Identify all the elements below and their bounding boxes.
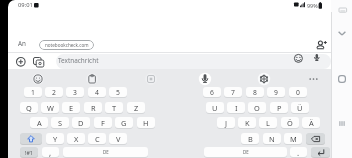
staticText: Z [134, 103, 139, 113]
button[interactable]: Q [20, 102, 38, 113]
staticText: 8 [253, 88, 257, 97]
button[interactable]: 3 [66, 87, 84, 97]
button[interactable]: 1 [24, 87, 42, 97]
button[interactable]: R [84, 102, 102, 113]
staticText: 9 [274, 88, 278, 97]
button[interactable]: D [72, 117, 90, 128]
button[interactable] [16, 57, 26, 67]
button[interactable] [339, 8, 347, 13]
button[interactable]: I [227, 102, 245, 113]
staticText: E [69, 103, 74, 113]
staticText: D [78, 118, 84, 128]
button[interactable]: 6 [203, 87, 221, 97]
staticText: F [101, 118, 105, 128]
staticText: An [18, 39, 26, 48]
button[interactable] [33, 57, 45, 68]
button[interactable]: S [51, 117, 69, 128]
button[interactable]: V [109, 133, 127, 144]
button[interactable] [257, 72, 271, 86]
button[interactable]: notebookcheck.com [39, 40, 94, 50]
staticText: I [235, 103, 238, 113]
staticText: Ü [297, 103, 303, 113]
button[interactable]: 5 [109, 87, 127, 97]
button[interactable]: O [248, 102, 266, 113]
button[interactable] [309, 77, 318, 81]
button[interactable] [338, 75, 346, 83]
staticText: C [95, 134, 100, 144]
staticText: N [269, 134, 275, 144]
button[interactable]: C [88, 133, 106, 144]
button[interactable] [313, 53, 321, 62]
button[interactable]: T [105, 102, 123, 113]
button[interactable]: A [30, 117, 48, 128]
staticText: X [74, 134, 79, 144]
staticText: P [277, 103, 282, 113]
button[interactable]: J [217, 117, 235, 128]
button[interactable] [306, 133, 325, 144]
staticText: !#1 [25, 149, 33, 156]
button[interactable] [338, 31, 346, 36]
button[interactable] [20, 133, 42, 144]
staticText: L [266, 118, 270, 128]
button[interactable]: E [62, 102, 80, 113]
button[interactable]: Y [46, 133, 64, 144]
button[interactable]: DE [63, 147, 148, 157]
staticText: M [290, 134, 297, 144]
staticText: O [254, 103, 260, 113]
button[interactable]: . [290, 147, 307, 157]
button[interactable] [85, 72, 99, 86]
staticText: Y [53, 134, 58, 144]
button[interactable] [294, 54, 303, 63]
button[interactable]: F [94, 117, 112, 128]
button[interactable]: N [263, 133, 281, 144]
button[interactable]: Ö [281, 117, 299, 128]
button[interactable]: Ä [302, 117, 320, 128]
staticText: S [58, 118, 63, 128]
button[interactable] [316, 40, 327, 50]
button[interactable] [339, 121, 346, 126]
button[interactable]: 7 [224, 87, 242, 97]
button[interactable]: G [115, 117, 133, 128]
staticText: Ö [287, 118, 293, 128]
button[interactable]: K [238, 117, 256, 128]
staticText: DE [243, 149, 249, 155]
button[interactable] [31, 72, 45, 86]
button[interactable]: 4 [88, 87, 106, 97]
button[interactable]: L [259, 117, 277, 128]
button[interactable]: 8 [246, 87, 264, 97]
staticText: . [297, 147, 300, 157]
staticText: J [225, 118, 228, 128]
staticText: 09:01 [18, 1, 33, 9]
button[interactable]: H [137, 117, 155, 128]
button[interactable]: U [206, 102, 224, 113]
staticText: Q [26, 103, 32, 113]
button[interactable]: 2 [45, 87, 63, 97]
staticText: 6 [210, 88, 214, 97]
button[interactable]: 0 [289, 87, 307, 97]
button[interactable]: P [270, 102, 288, 113]
button[interactable]: B [241, 133, 259, 144]
button[interactable]: M [284, 133, 302, 144]
button[interactable]: , [42, 147, 59, 157]
staticText: 99% [307, 2, 318, 9]
staticText: T [112, 103, 117, 113]
button[interactable]: Ü [291, 102, 309, 113]
staticText: Ä [309, 118, 314, 128]
button[interactable] [311, 147, 330, 157]
button[interactable]: W [41, 102, 59, 113]
staticText: 0 [296, 88, 300, 97]
staticText: K [245, 118, 250, 128]
staticText: W [47, 103, 54, 113]
button[interactable]: !#1 [20, 147, 38, 157]
button[interactable]: X [67, 133, 85, 144]
staticText: U [212, 103, 218, 113]
button[interactable] [56, 54, 331, 69]
staticText: H [143, 118, 149, 128]
button[interactable]: Z [127, 102, 145, 113]
button[interactable]: 9 [267, 87, 285, 97]
button[interactable] [198, 72, 212, 86]
button[interactable]: DE [204, 147, 287, 157]
staticText: 3 [73, 88, 77, 97]
staticText: 5 [116, 88, 120, 97]
button[interactable] [144, 72, 158, 86]
